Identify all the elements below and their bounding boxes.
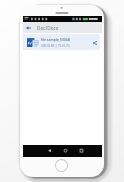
button[interactable]: Home (50, 145, 76, 157)
button[interactable]: file sample_500kB (23, 34, 100, 50)
button[interactable]: Back (23, 145, 50, 157)
button[interactable]: Back (23, 22, 33, 33)
button[interactable]: Share (90, 35, 99, 50)
staticText: 499.38 KB | 19-01-70 (41, 44, 70, 48)
button[interactable]: Recents (76, 145, 102, 157)
staticText: file sample_500kB (41, 37, 71, 42)
staticText: Doc/Docx (37, 25, 59, 31)
